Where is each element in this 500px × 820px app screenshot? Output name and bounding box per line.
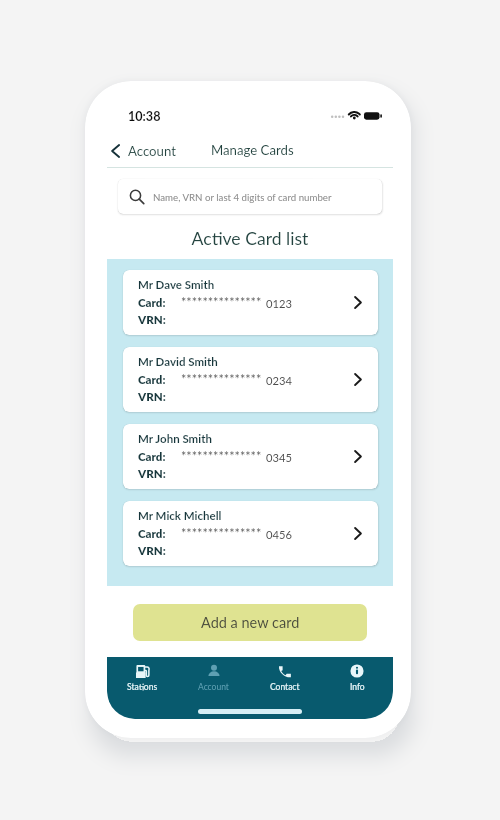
staticText: Mr Dave Smith: [138, 278, 215, 292]
staticText: Account: [198, 682, 229, 692]
staticText: Card:: [138, 373, 166, 387]
staticText: Mr John Smith: [138, 432, 212, 446]
staticText: ***************: [181, 449, 262, 464]
staticText: 10:38: [128, 109, 161, 124]
button[interactable]: Mr Dave Smith: [123, 270, 378, 335]
button[interactable]: Add a new card: [133, 604, 367, 641]
staticText: VRN:: [138, 390, 166, 404]
staticText: Mr David Smith: [138, 355, 218, 369]
staticText: VRN:: [138, 467, 166, 481]
button[interactable]: Account: [178, 664, 249, 704]
button[interactable]: Name, VRN or last 4 digits of card numbe…: [118, 179, 382, 214]
button[interactable]: Contact: [249, 664, 321, 704]
staticText: Contact: [270, 682, 300, 692]
button[interactable]: Mr David Smith: [123, 347, 378, 412]
other: Open card details: [354, 373, 362, 386]
other: Open card details: [354, 296, 362, 309]
staticText: 0345: [266, 451, 292, 464]
button[interactable]: Account: [107, 139, 182, 163]
staticText: Info: [350, 682, 365, 692]
staticText: ***************: [181, 295, 262, 310]
button[interactable]: Info: [321, 664, 393, 704]
staticText: Active Card list: [107, 228, 393, 249]
button[interactable]: Mr John Smith: [123, 424, 378, 489]
staticText: Manage Cards: [211, 142, 294, 158]
staticText: Mr Mick Michell: [138, 509, 222, 523]
button[interactable]: Mr Mick Michell: [123, 501, 378, 566]
staticText: ***************: [181, 526, 262, 541]
staticText: Add a new card: [201, 614, 300, 631]
staticText: Card:: [138, 296, 166, 310]
staticText: VRN:: [138, 313, 166, 327]
staticText: Name, VRN or last 4 digits of card numbe…: [153, 191, 332, 203]
staticText: 0234: [266, 374, 292, 387]
staticText: 0123: [266, 297, 292, 310]
staticText: Card:: [138, 450, 166, 464]
staticText: ***************: [181, 372, 262, 387]
staticText: 0456: [266, 528, 292, 541]
other: Open card details: [354, 450, 362, 463]
staticText: Card:: [138, 527, 166, 541]
button[interactable]: Stations: [107, 664, 178, 704]
staticText: Stations: [127, 682, 158, 692]
other: Open card details: [354, 527, 362, 540]
staticText: VRN:: [138, 544, 166, 558]
staticText: Account: [128, 143, 176, 159]
